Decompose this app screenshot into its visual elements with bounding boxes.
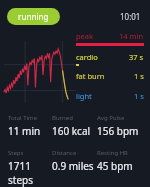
staticText: 37 s [129, 52, 144, 62]
staticText: 0.9 miles [52, 159, 94, 173]
staticText: running [18, 11, 49, 22]
staticText: 1 s [134, 91, 144, 101]
staticText: cardio [76, 52, 98, 62]
staticText: fat burn [76, 71, 105, 81]
button[interactable]: Burned [52, 114, 97, 138]
button[interactable]: Distance [52, 149, 97, 173]
button[interactable]: Steps [8, 149, 52, 187]
button[interactable]: peak [76, 31, 144, 46]
staticText: 1 s [134, 71, 144, 81]
staticText: light [76, 91, 92, 101]
staticText: Burned [52, 114, 73, 122]
button[interactable]: Resting HR [97, 149, 142, 173]
button[interactable] [0, 31, 76, 103]
button[interactable]: fat burn [76, 71, 144, 85]
staticText: Total Time [8, 114, 38, 122]
staticText: 156 bpm [97, 124, 139, 138]
staticText: 1711 steps [8, 159, 52, 187]
button[interactable]: Total Time [8, 114, 52, 138]
staticText: Resting HR [97, 149, 128, 157]
staticText: peak [76, 31, 94, 41]
staticText: 10:01 [120, 11, 141, 22]
staticText: Avg Pulse [97, 114, 125, 122]
staticText: 11 min [8, 124, 41, 138]
button[interactable]: running [7, 8, 60, 25]
staticText: 160 kcal [52, 124, 91, 138]
staticText: Steps [8, 149, 24, 157]
button[interactable]: light [76, 91, 144, 103]
staticText: 45 bpm [97, 159, 133, 173]
staticText: 14 min [119, 31, 144, 41]
button[interactable]: cardio [76, 52, 144, 66]
button[interactable]: Avg Pulse [97, 114, 142, 138]
staticText: Distance [52, 149, 77, 157]
